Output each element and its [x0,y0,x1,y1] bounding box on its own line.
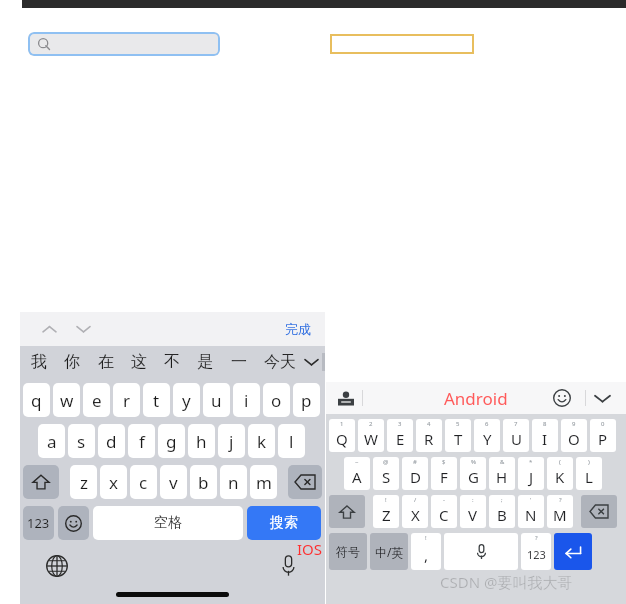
button[interactable]: @ [373,457,399,490]
button[interactable]: ( [547,457,573,490]
staticText: Y [483,429,492,449]
button[interactable]: i [233,383,260,417]
button[interactable]: g [158,424,185,458]
button[interactable]: ' [518,495,544,528]
staticText: 一 [231,352,247,372]
button[interactable]: z [70,465,97,499]
button[interactable] [444,533,518,570]
button[interactable]: b [190,465,217,499]
button[interactable]: m [250,465,277,499]
button[interactable]: v [160,465,187,499]
button[interactable] [58,506,89,540]
button[interactable]: 符号 [329,533,367,570]
staticText: y [182,389,191,412]
staticText: 这 [131,352,147,372]
button[interactable]: 中/英 [370,533,408,570]
button[interactable]: 不 [161,352,183,372]
button[interactable]: d [98,424,125,458]
staticText: ; [501,496,503,504]
button[interactable]: n [220,465,247,499]
button[interactable]: ? [521,533,551,570]
button[interactable]: x [100,465,127,499]
button[interactable]: Hide keyboard [590,386,614,410]
button[interactable]: $ [431,457,457,490]
button[interactable]: 3 [387,419,413,452]
button[interactable] [28,32,220,56]
button[interactable]: ) [576,457,602,490]
button[interactable]: 是 [194,352,216,372]
button[interactable]: 0 [590,419,616,452]
staticText: o [271,389,282,412]
button[interactable]: k [248,424,275,458]
button[interactable]: 我 [28,352,50,372]
button[interactable] [581,495,617,528]
button[interactable]: : [460,495,486,528]
button[interactable]: Emoji [550,386,574,410]
button[interactable]: 搜索 [247,506,321,540]
button[interactable]: y [173,383,200,417]
button[interactable]: w [53,383,80,417]
button[interactable]: 2 [358,419,384,452]
button[interactable]: 空格 [93,506,243,540]
button[interactable]: f [128,424,155,458]
button[interactable] [330,34,474,54]
button[interactable]: 一 [228,352,250,372]
button[interactable]: a [38,424,65,458]
button[interactable]: 完成 [285,321,311,337]
button[interactable]: ? [547,495,573,528]
button[interactable]: 4 [416,419,442,452]
button[interactable]: t [143,383,170,417]
button[interactable]: & [489,457,515,490]
button[interactable]: s [68,424,95,458]
button[interactable]: 1 [329,419,355,452]
button[interactable] [23,465,59,499]
button[interactable]: l [278,424,305,458]
button[interactable]: j [218,424,245,458]
button[interactable]: Switch language [42,551,72,581]
button[interactable] [288,465,322,499]
button[interactable]: ~ [344,457,370,490]
staticText: R [424,429,434,449]
button[interactable]: 6 [474,419,500,452]
staticText: A [352,467,362,487]
staticText: L [585,467,593,487]
button[interactable]: 这 [128,352,150,372]
staticText: i [244,389,249,412]
button[interactable]: Expand candidates [301,352,321,372]
button[interactable]: / [402,495,428,528]
button[interactable]: c [130,465,157,499]
button[interactable]: p [293,383,320,417]
button[interactable]: * [518,457,544,490]
button[interactable]: 今天 [261,352,299,372]
button[interactable]: 7 [503,419,529,452]
button[interactable]: % [460,457,486,490]
button[interactable]: 9 [561,419,587,452]
button[interactable]: # [402,457,428,490]
button[interactable] [554,533,592,570]
button[interactable]: q [23,383,50,417]
button[interactable]: Voice input [273,551,303,581]
button[interactable]: Previous [36,316,62,342]
button[interactable]: r [113,383,140,417]
button[interactable]: e [83,383,110,417]
button[interactable]: 5 [445,419,471,452]
button[interactable]: ; [489,495,515,528]
staticText: d [106,430,117,453]
button[interactable]: 你 [61,352,83,372]
button[interactable]: - [431,495,457,528]
button[interactable]: 8 [532,419,558,452]
button[interactable]: 在 [95,352,117,372]
staticText: C [439,505,449,525]
staticText: u [211,389,222,412]
button[interactable]: 123 [23,506,54,540]
button[interactable] [329,495,365,528]
staticText: 符号 [336,544,360,559]
button[interactable]: ! [411,533,441,570]
button[interactable]: Next [70,316,96,342]
button[interactable]: ! [373,495,399,528]
button[interactable]: h [188,424,215,458]
button[interactable]: u [203,383,230,417]
staticText: 你 [64,352,80,372]
button[interactable]: o [263,383,290,417]
button[interactable]: Keyboard settings [334,386,358,410]
